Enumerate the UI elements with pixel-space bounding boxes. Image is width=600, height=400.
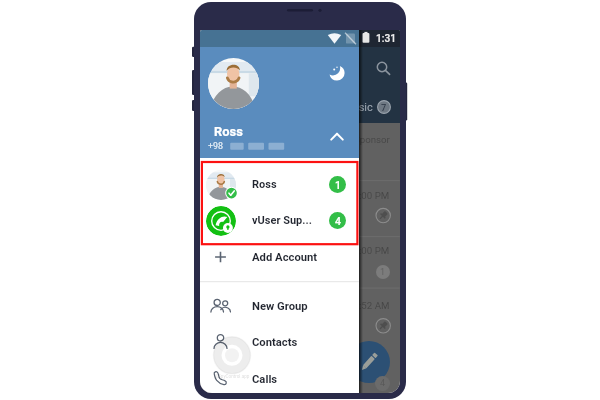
staticText: :00 PM: [359, 245, 390, 256]
staticText: :52 AM: [359, 300, 390, 311]
staticText: 1: [335, 179, 341, 191]
staticText: Ross: [252, 178, 277, 191]
staticText: @SpyControl.app: [214, 374, 250, 379]
button[interactable]: vUser Sup...: [200, 202, 359, 239]
button[interactable]: Collapse accounts: [328, 128, 346, 146]
button[interactable]: Contacts: [200, 324, 359, 360]
staticText: Contacts: [252, 336, 298, 349]
button[interactable]: Calls: [200, 361, 359, 393]
button[interactable]: New Group: [200, 288, 359, 324]
button[interactable]: Night mode: [328, 64, 346, 82]
staticText: :00 PM: [359, 190, 390, 201]
staticText: 1:31: [376, 33, 397, 45]
button[interactable]: Profile photo: [208, 58, 259, 109]
staticText: 1: [380, 267, 386, 278]
staticText: 4: [380, 378, 386, 389]
staticText: Music: [343, 101, 373, 114]
button[interactable]: Music: [328, 92, 376, 120]
staticText: Ross: [214, 124, 243, 139]
staticText: New Group: [252, 300, 308, 313]
staticText: Sponsor: [354, 134, 390, 145]
button[interactable]: New message: [348, 341, 390, 383]
button[interactable]: Ross: [200, 166, 359, 203]
button[interactable]: Add Account: [200, 239, 359, 275]
staticText: 7: [381, 102, 387, 113]
staticText: Calls: [252, 373, 278, 386]
staticText: +98: [208, 141, 224, 151]
staticText: vUser Sup...: [252, 214, 312, 227]
staticText: Add Account: [252, 251, 318, 264]
staticText: 4: [335, 215, 341, 227]
button[interactable]: Search: [373, 58, 391, 76]
